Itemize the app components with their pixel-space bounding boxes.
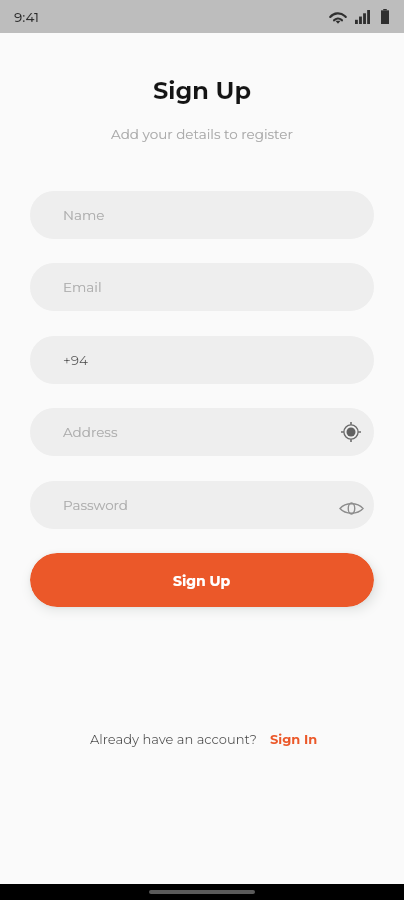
staticText: Sign Up (0, 76, 404, 105)
staticText: +94 (63, 352, 88, 368)
staticText: Password (63, 497, 129, 513)
staticText: Name (63, 207, 105, 223)
button[interactable]: Sign Up (30, 553, 374, 607)
button[interactable]: Email (30, 263, 374, 311)
staticText: Add your details to register (0, 126, 404, 142)
staticText: Sign In (270, 731, 318, 747)
button[interactable]: Sign In (270, 731, 318, 747)
button[interactable]: Show password (338, 492, 364, 518)
staticText: Already have an account? (90, 731, 257, 747)
button[interactable]: Password (30, 481, 374, 529)
button[interactable]: Use current location (338, 419, 364, 445)
button[interactable]: +94 (30, 336, 374, 384)
button[interactable]: Address (30, 408, 374, 456)
staticText: Email (63, 279, 102, 295)
staticText: 9:41 (14, 9, 40, 25)
staticText: Sign Up (173, 572, 231, 589)
button[interactable]: Name (30, 191, 374, 239)
staticText: Address (63, 424, 118, 440)
